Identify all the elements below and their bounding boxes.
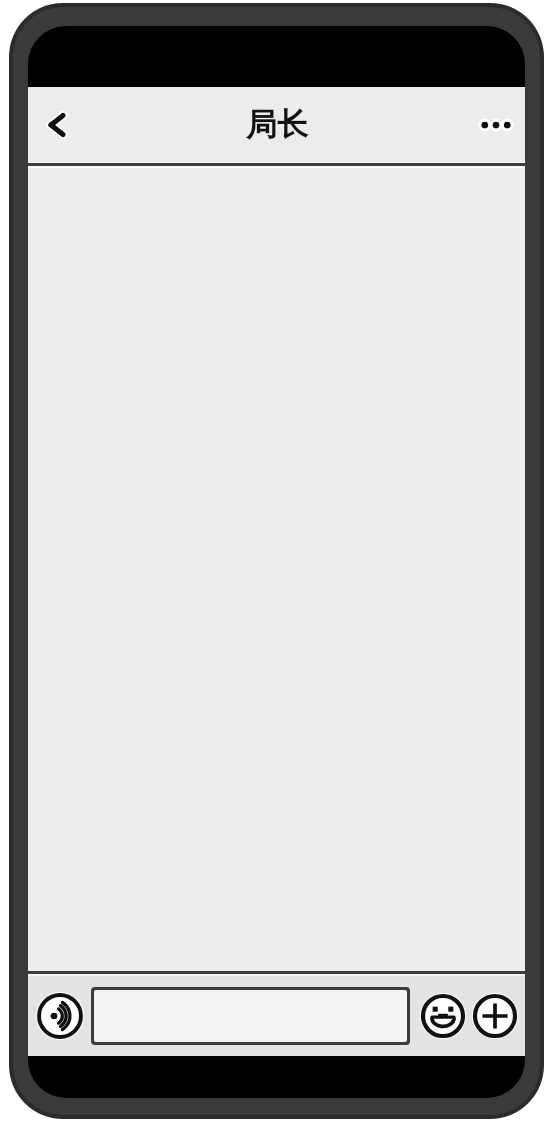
- staticText: 局长: [246, 105, 308, 144]
- button[interactable]: Emoji: [417, 990, 469, 1042]
- button[interactable]: Back: [28, 96, 86, 154]
- button[interactable]: More options: [467, 96, 525, 154]
- button[interactable]: More functions: [469, 990, 521, 1042]
- button[interactable]: Voice input: [34, 990, 86, 1042]
